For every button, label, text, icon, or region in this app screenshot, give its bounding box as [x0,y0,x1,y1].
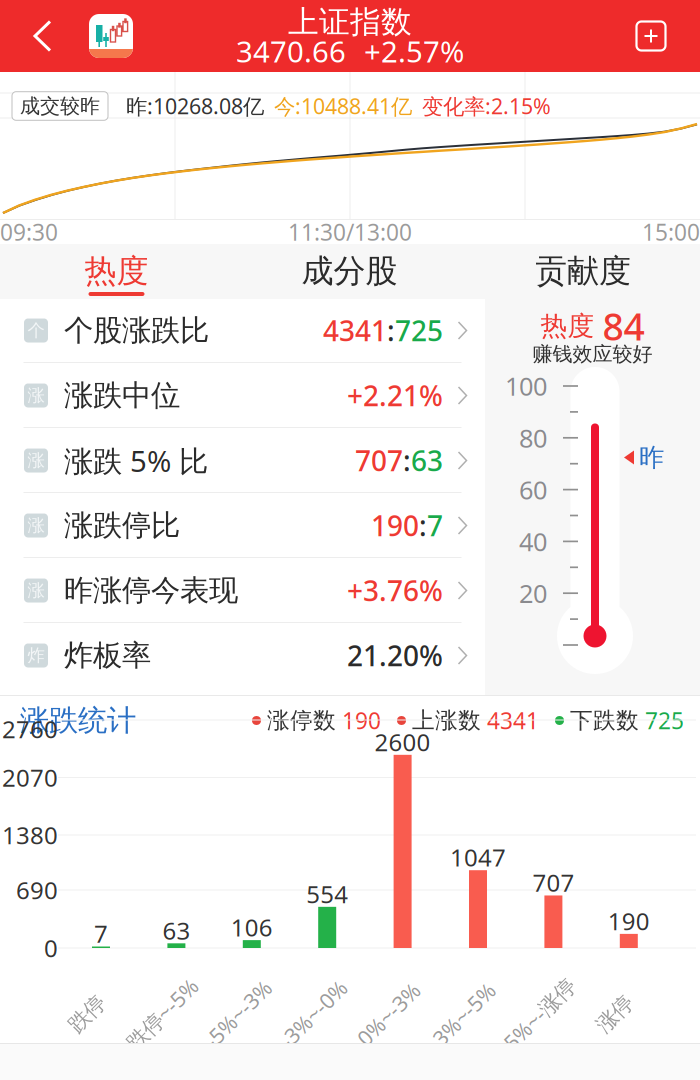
staticText: 昨涨停今表现 [64,572,238,608]
staticText: 今:10488.41亿 [274,92,412,120]
staticText: : [387,312,395,349]
staticText: 个股涨跌比 [64,312,209,348]
button[interactable]: 涨 [0,363,485,428]
staticText: 725 [645,705,684,735]
staticText: 变化率:2.15% [422,92,551,120]
staticText: 106 [231,911,273,943]
staticText: 15:00 [642,217,700,247]
staticText: 09:30 [0,217,58,247]
staticText: 2600 [375,726,431,758]
staticText: +2.57% [364,31,464,70]
staticText: 涨 [27,515,44,536]
staticText: 下跌数 [570,707,639,734]
staticText: 21.20% [347,637,443,674]
staticText: 赚钱效应较好 [532,342,652,366]
button[interactable]: 炸 [0,623,485,688]
staticText: 0 [44,932,58,964]
staticText: 80 [519,421,547,455]
staticText: -5%~-3% [195,1000,281,1028]
staticText: 707 [532,866,574,898]
staticText: 1047 [450,841,506,873]
button[interactable]: Add [620,0,682,72]
staticText: 707 [355,442,403,479]
staticText: 1380 [2,819,58,851]
staticText: 4341 [487,705,539,735]
staticText: 贡献度 [535,251,631,291]
staticText: 100 [505,369,547,403]
staticText: 60 [519,473,547,506]
staticText: 84 [602,301,644,351]
button[interactable]: 个 [0,298,485,363]
staticText: +2.21% [347,377,443,414]
staticText: +3.76% [347,572,443,609]
staticText: 190 [342,705,381,735]
staticText: 725 [395,312,443,349]
staticText: 63 [162,914,190,946]
staticText: 跌停 [66,1001,108,1027]
staticText: 5%~-涨停 [494,1000,585,1028]
staticText: 上涨数 [412,707,481,734]
staticText: 涨跌中位 [64,377,180,413]
button[interactable]: Back [0,0,86,72]
staticText: 涨停数 [267,707,336,734]
staticText: 上证指数 [288,3,412,41]
staticText: 554 [306,878,348,910]
staticText: 热度 [84,251,148,291]
staticText: 涨停 [594,1001,636,1027]
staticText: 昨 [639,442,664,473]
staticText: 3%~-5% [424,1000,503,1028]
staticText: 涨跌统计 [20,702,136,738]
staticText: 3470.66 [236,31,346,70]
button[interactable]: 热度 [0,244,233,299]
button[interactable]: 成交较昨 [12,92,108,120]
staticText: 190 [371,507,419,544]
button[interactable]: 涨 [0,493,485,558]
staticText: 7 [427,507,443,544]
button[interactable]: 涨 [0,428,485,493]
staticText: 涨 [27,385,44,406]
staticText: 涨 [27,450,44,471]
staticText: 炸板率 [64,637,151,673]
staticText: -3%~-0% [270,1000,356,1028]
staticText: 涨跌 5% 比 [64,441,208,480]
staticText: 炸 [27,645,44,666]
staticText: 40 [519,525,547,558]
button[interactable]: 成分股 [233,244,466,299]
staticText: 涨 [27,580,44,601]
staticText: 4341 [323,312,387,349]
staticText: 昨:10268.08亿 [126,92,264,120]
staticText: 20 [519,576,547,610]
staticText: : [419,507,427,544]
staticText: : [403,442,411,479]
staticText: 涨跌停比 [64,507,180,543]
staticText: 热度 [540,310,594,342]
staticText: 690 [16,874,58,906]
staticText: 63 [411,442,443,479]
staticText: 11:30/13:00 [288,217,412,247]
staticText: 0%~-3% [349,1000,428,1028]
staticText: 个 [27,320,44,341]
staticText: 190 [608,905,650,937]
button[interactable]: App [86,0,136,72]
staticText: 7 [94,918,108,949]
staticText: 成交较昨 [20,94,100,118]
button[interactable]: 贡献度 [466,244,700,299]
staticText: 成分股 [301,251,397,291]
staticText: 跌停~-5% [117,1000,208,1028]
staticText: 2070 [2,762,58,793]
button[interactable]: 涨 [0,558,485,623]
staticText: 2760 [2,713,58,745]
